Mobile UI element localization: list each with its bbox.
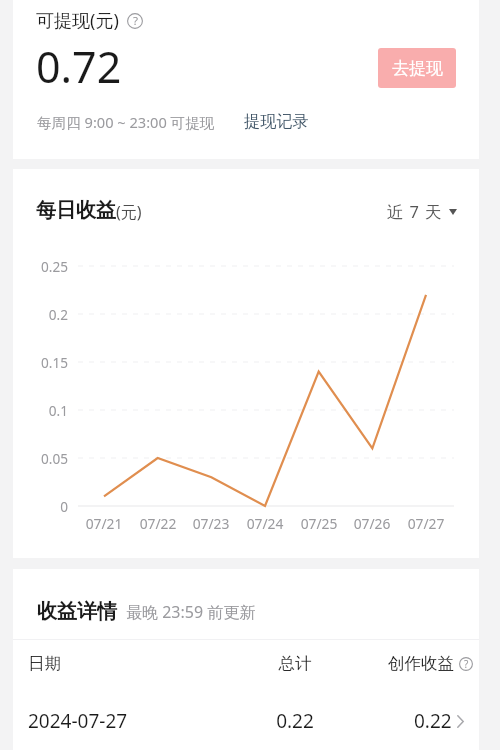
staticText: 0.25 <box>13 257 68 276</box>
staticText: 07/22 <box>131 514 185 533</box>
staticText: ? <box>133 13 138 29</box>
staticText: 每周四 9:00 ~ 23:00 可提现 <box>37 112 215 132</box>
staticText: 0.05 <box>13 449 68 468</box>
staticText: 07/21 <box>77 514 131 533</box>
button[interactable]: 近 7 天 <box>387 200 457 223</box>
button[interactable]: What is creation earnings <box>459 657 473 671</box>
staticText: 提现记录 <box>244 111 309 131</box>
staticText: 2024-07-27 <box>28 708 128 734</box>
staticText: 近 7 天 <box>387 200 443 223</box>
staticText: 日期 <box>28 653 61 674</box>
staticText: 07/26 <box>345 514 399 533</box>
staticText: ? <box>464 657 469 671</box>
button[interactable]: 提现记录 <box>239 107 314 135</box>
staticText: 最晚 23:59 前更新 <box>126 601 256 623</box>
staticText: 0.15 <box>13 353 68 372</box>
staticText: 07/23 <box>184 514 238 533</box>
staticText: 0.1 <box>13 401 68 420</box>
staticText: 07/25 <box>292 514 346 533</box>
staticText: 创作收益 <box>388 653 454 674</box>
staticText: 07/27 <box>399 514 453 533</box>
staticText: 去提现 <box>392 58 443 79</box>
staticText: 总计 <box>250 653 340 674</box>
staticText: 每日收益 <box>36 198 116 223</box>
staticText: 07/24 <box>238 514 292 533</box>
button[interactable]: What is withdrawable amount <box>127 13 143 29</box>
staticText: 0.22 <box>250 708 340 734</box>
staticText: 0.72 <box>36 37 122 96</box>
staticText: 0.2 <box>13 305 68 324</box>
staticText: (元) <box>116 201 142 223</box>
staticText: 收益详情 <box>37 599 117 624</box>
staticText: 可提现(元) <box>36 8 119 33</box>
other: Details <box>457 715 464 728</box>
button[interactable]: 去提现 <box>378 48 456 88</box>
staticText: 0 <box>13 497 68 516</box>
staticText: 0.22 <box>414 708 452 734</box>
button[interactable]: 2024-07-27 <box>13 693 479 741</box>
